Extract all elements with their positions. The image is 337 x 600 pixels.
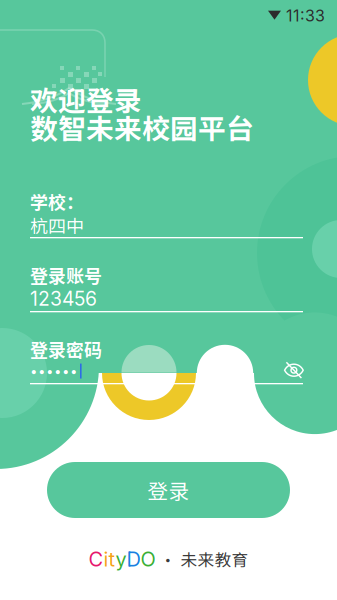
staticText: •••••• — [30, 363, 78, 379]
staticText: 11:33 — [286, 6, 325, 25]
staticText: O — [140, 547, 155, 571]
staticText: C — [88, 547, 103, 571]
staticText: 登录账号 — [30, 262, 102, 288]
staticText: t — [108, 547, 115, 571]
staticText: 数智未来校园平台 — [30, 107, 254, 147]
staticText: · 未来教育 — [155, 547, 248, 571]
button[interactable]: 登录 — [47, 462, 290, 518]
staticText: 登录 — [147, 475, 189, 505]
staticText: 学校： — [30, 188, 84, 214]
staticText: 登录密码 — [30, 336, 102, 362]
staticText: D — [126, 547, 140, 571]
staticText: i — [103, 547, 108, 571]
staticText: y — [115, 547, 126, 571]
button[interactable]: Show password — [277, 356, 311, 384]
staticText: 杭四中 — [30, 212, 84, 238]
staticText: 123456 — [30, 287, 97, 310]
staticText: 欢迎登录 — [30, 79, 142, 119]
